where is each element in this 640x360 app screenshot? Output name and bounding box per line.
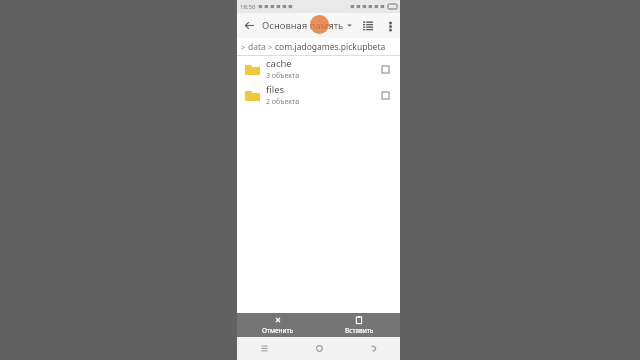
button[interactable]: > bbox=[237, 38, 400, 56]
staticText: > bbox=[241, 42, 246, 52]
button[interactable]: List view bbox=[355, 13, 380, 38]
button[interactable]: Recents bbox=[237, 337, 292, 360]
button[interactable]: Home bbox=[292, 337, 346, 360]
staticText: data bbox=[248, 41, 266, 53]
button[interactable]: Вставить bbox=[318, 313, 400, 337]
staticText: cache bbox=[266, 57, 292, 70]
staticText: Основная память bbox=[262, 19, 344, 32]
staticText: 3 объекта bbox=[266, 71, 300, 81]
button[interactable]: cache bbox=[237, 56, 400, 82]
staticText: 2 объекта bbox=[266, 97, 300, 107]
button[interactable]: files bbox=[237, 82, 400, 108]
button[interactable]: Back bbox=[346, 337, 400, 360]
staticText: com.jadogames.pickupbeta bbox=[275, 41, 386, 53]
button[interactable]: Select files bbox=[374, 84, 396, 106]
button[interactable]: Select cache bbox=[374, 58, 396, 80]
staticText: files bbox=[266, 83, 285, 96]
button[interactable]: Отменить bbox=[237, 313, 318, 337]
staticText: Вставить bbox=[345, 326, 374, 335]
button[interactable]: More options bbox=[380, 16, 400, 36]
staticText: Отменить bbox=[262, 326, 294, 335]
staticText: 18:50 bbox=[240, 3, 256, 11]
button[interactable]: Основная память bbox=[262, 13, 355, 38]
staticText: > bbox=[268, 42, 273, 52]
button[interactable]: Back bbox=[237, 13, 262, 38]
